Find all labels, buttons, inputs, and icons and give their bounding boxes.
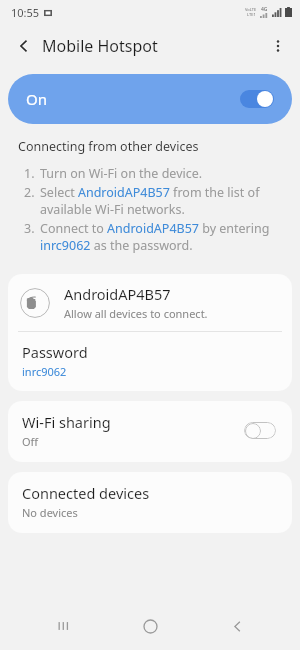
staticText: Connecting from other devices [18, 138, 199, 155]
button[interactable]: More options [262, 30, 294, 62]
button[interactable]: Back [213, 602, 261, 650]
staticText: 2. [24, 184, 40, 201]
staticText: Mobile Hotspot [42, 35, 158, 57]
staticText: 1. [24, 165, 40, 182]
staticText: Connected devices [22, 483, 150, 503]
staticText: 3. [24, 220, 40, 237]
staticText: VoLTE [245, 7, 257, 12]
staticText: 10:55 [11, 5, 40, 20]
button[interactable]: AndroidAP4B57 [8, 274, 292, 331]
button[interactable]: Recent apps [39, 602, 87, 650]
staticText: Select AndroidAP4B57 from the list of av… [40, 184, 282, 218]
button[interactable]: Wi-Fi sharing [8, 401, 292, 462]
staticText: Turn on Wi-Fi on the device. [40, 165, 203, 182]
staticText: Password [22, 342, 88, 362]
staticText: LTE1 [247, 12, 256, 17]
button[interactable]: Back [8, 30, 40, 62]
staticText: inrc9062 [22, 364, 67, 379]
staticText: On [26, 89, 47, 109]
staticText: Off [22, 434, 39, 449]
button[interactable]: On [8, 74, 292, 124]
button[interactable]: Home [126, 602, 174, 650]
staticText: Wi-Fi sharing [22, 412, 111, 432]
button[interactable]: Connected devices [8, 472, 292, 533]
button[interactable]: Password [8, 332, 292, 391]
staticText: 4G [261, 6, 268, 13]
staticText: Allow all devices to connect. [64, 306, 208, 321]
staticText: AndroidAP4B57 [64, 284, 171, 304]
staticText: Connect to AndroidAP4B57 by entering inr… [40, 220, 282, 254]
staticText: No devices [22, 505, 78, 520]
